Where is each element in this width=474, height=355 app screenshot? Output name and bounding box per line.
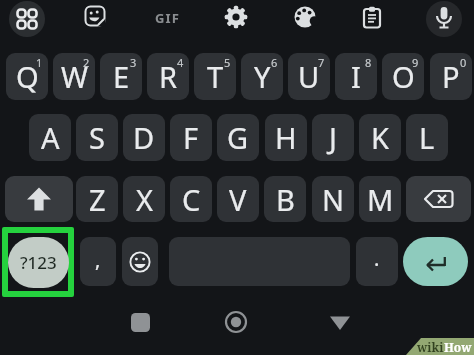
staticText: R (159, 57, 178, 96)
staticText: D (133, 118, 155, 157)
button[interactable] (225, 311, 247, 333)
staticText: N (322, 180, 345, 219)
staticText: C (182, 180, 201, 219)
button[interactable] (122, 237, 158, 286)
staticText: Y (254, 57, 271, 96)
button[interactable] (84, 5, 106, 27)
staticText: 7 (318, 55, 325, 70)
button[interactable]: N (312, 176, 354, 222)
button[interactable]: E (100, 53, 142, 100)
button[interactable]: ?123 (8, 237, 69, 288)
button[interactable] (426, 1, 462, 37)
staticText: T (207, 57, 224, 96)
button[interactable]: S (76, 114, 118, 161)
button[interactable] (406, 176, 471, 222)
staticText: 0 (460, 55, 467, 70)
staticText: H (275, 118, 297, 157)
button[interactable]: W (53, 53, 95, 100)
staticText: I (351, 57, 361, 96)
button[interactable]: J (312, 114, 354, 161)
staticText: 5 (224, 55, 231, 70)
button[interactable] (5, 176, 73, 222)
staticText: B (276, 180, 295, 219)
button[interactable]: B (264, 176, 306, 222)
button[interactable] (329, 315, 351, 331)
staticText: M (367, 180, 394, 219)
button[interactable]: H (265, 114, 307, 161)
button[interactable]: K (359, 114, 401, 161)
staticText: L (419, 118, 435, 157)
button[interactable]: T (194, 53, 236, 100)
button[interactable]: D (123, 114, 165, 161)
staticText: O (392, 57, 415, 96)
button[interactable]: F (170, 114, 212, 161)
button[interactable]: V (217, 176, 259, 222)
button[interactable]: , (80, 237, 116, 286)
button[interactable] (403, 237, 468, 286)
staticText: F (183, 118, 199, 157)
staticText: 3 (130, 55, 137, 70)
staticText: GIF (155, 9, 181, 25)
staticText: 4 (177, 55, 184, 70)
button[interactable] (361, 5, 383, 29)
staticText: , (95, 246, 101, 273)
button[interactable]: Z (76, 176, 118, 222)
button[interactable]: O (382, 53, 424, 100)
staticText: E (113, 57, 130, 96)
staticText: S (89, 118, 105, 157)
staticText: How (444, 339, 472, 355)
button[interactable]: M (359, 176, 401, 222)
button[interactable]: Q (6, 53, 48, 100)
button[interactable]: I (335, 53, 377, 100)
staticText: Z (89, 180, 106, 219)
staticText: G (227, 118, 249, 157)
staticText: 2 (83, 55, 90, 70)
button[interactable] (293, 5, 317, 29)
button[interactable]: U (288, 53, 330, 100)
staticText: W (61, 57, 88, 96)
staticText: Q (16, 57, 39, 96)
button[interactable]: Y (241, 53, 283, 100)
staticText: wiki (417, 339, 444, 355)
staticText: 9 (412, 55, 419, 70)
button[interactable]: C (170, 176, 212, 222)
staticText: K (371, 118, 389, 157)
staticText: U (298, 57, 320, 96)
staticText: 6 (271, 55, 278, 70)
staticText: J (329, 118, 337, 157)
staticText: . (374, 245, 380, 272)
staticText: P (442, 57, 460, 96)
button[interactable]: A (29, 114, 71, 161)
staticText: V (229, 180, 247, 219)
button[interactable]: R (147, 53, 189, 100)
staticText: 8 (365, 55, 372, 70)
button[interactable]: . (356, 237, 398, 286)
staticText: X (136, 180, 153, 219)
staticText: A (41, 118, 60, 157)
button[interactable]: P (430, 53, 472, 100)
staticText: 1 (36, 55, 43, 70)
button[interactable]: G (217, 114, 259, 161)
staticText: ?123 (20, 251, 57, 274)
button[interactable]: L (406, 114, 448, 161)
button[interactable]: X (123, 176, 165, 222)
button[interactable] (9, 1, 45, 37)
button[interactable] (131, 313, 150, 332)
button[interactable] (223, 4, 249, 30)
button[interactable]: GIF (150, 9, 186, 25)
